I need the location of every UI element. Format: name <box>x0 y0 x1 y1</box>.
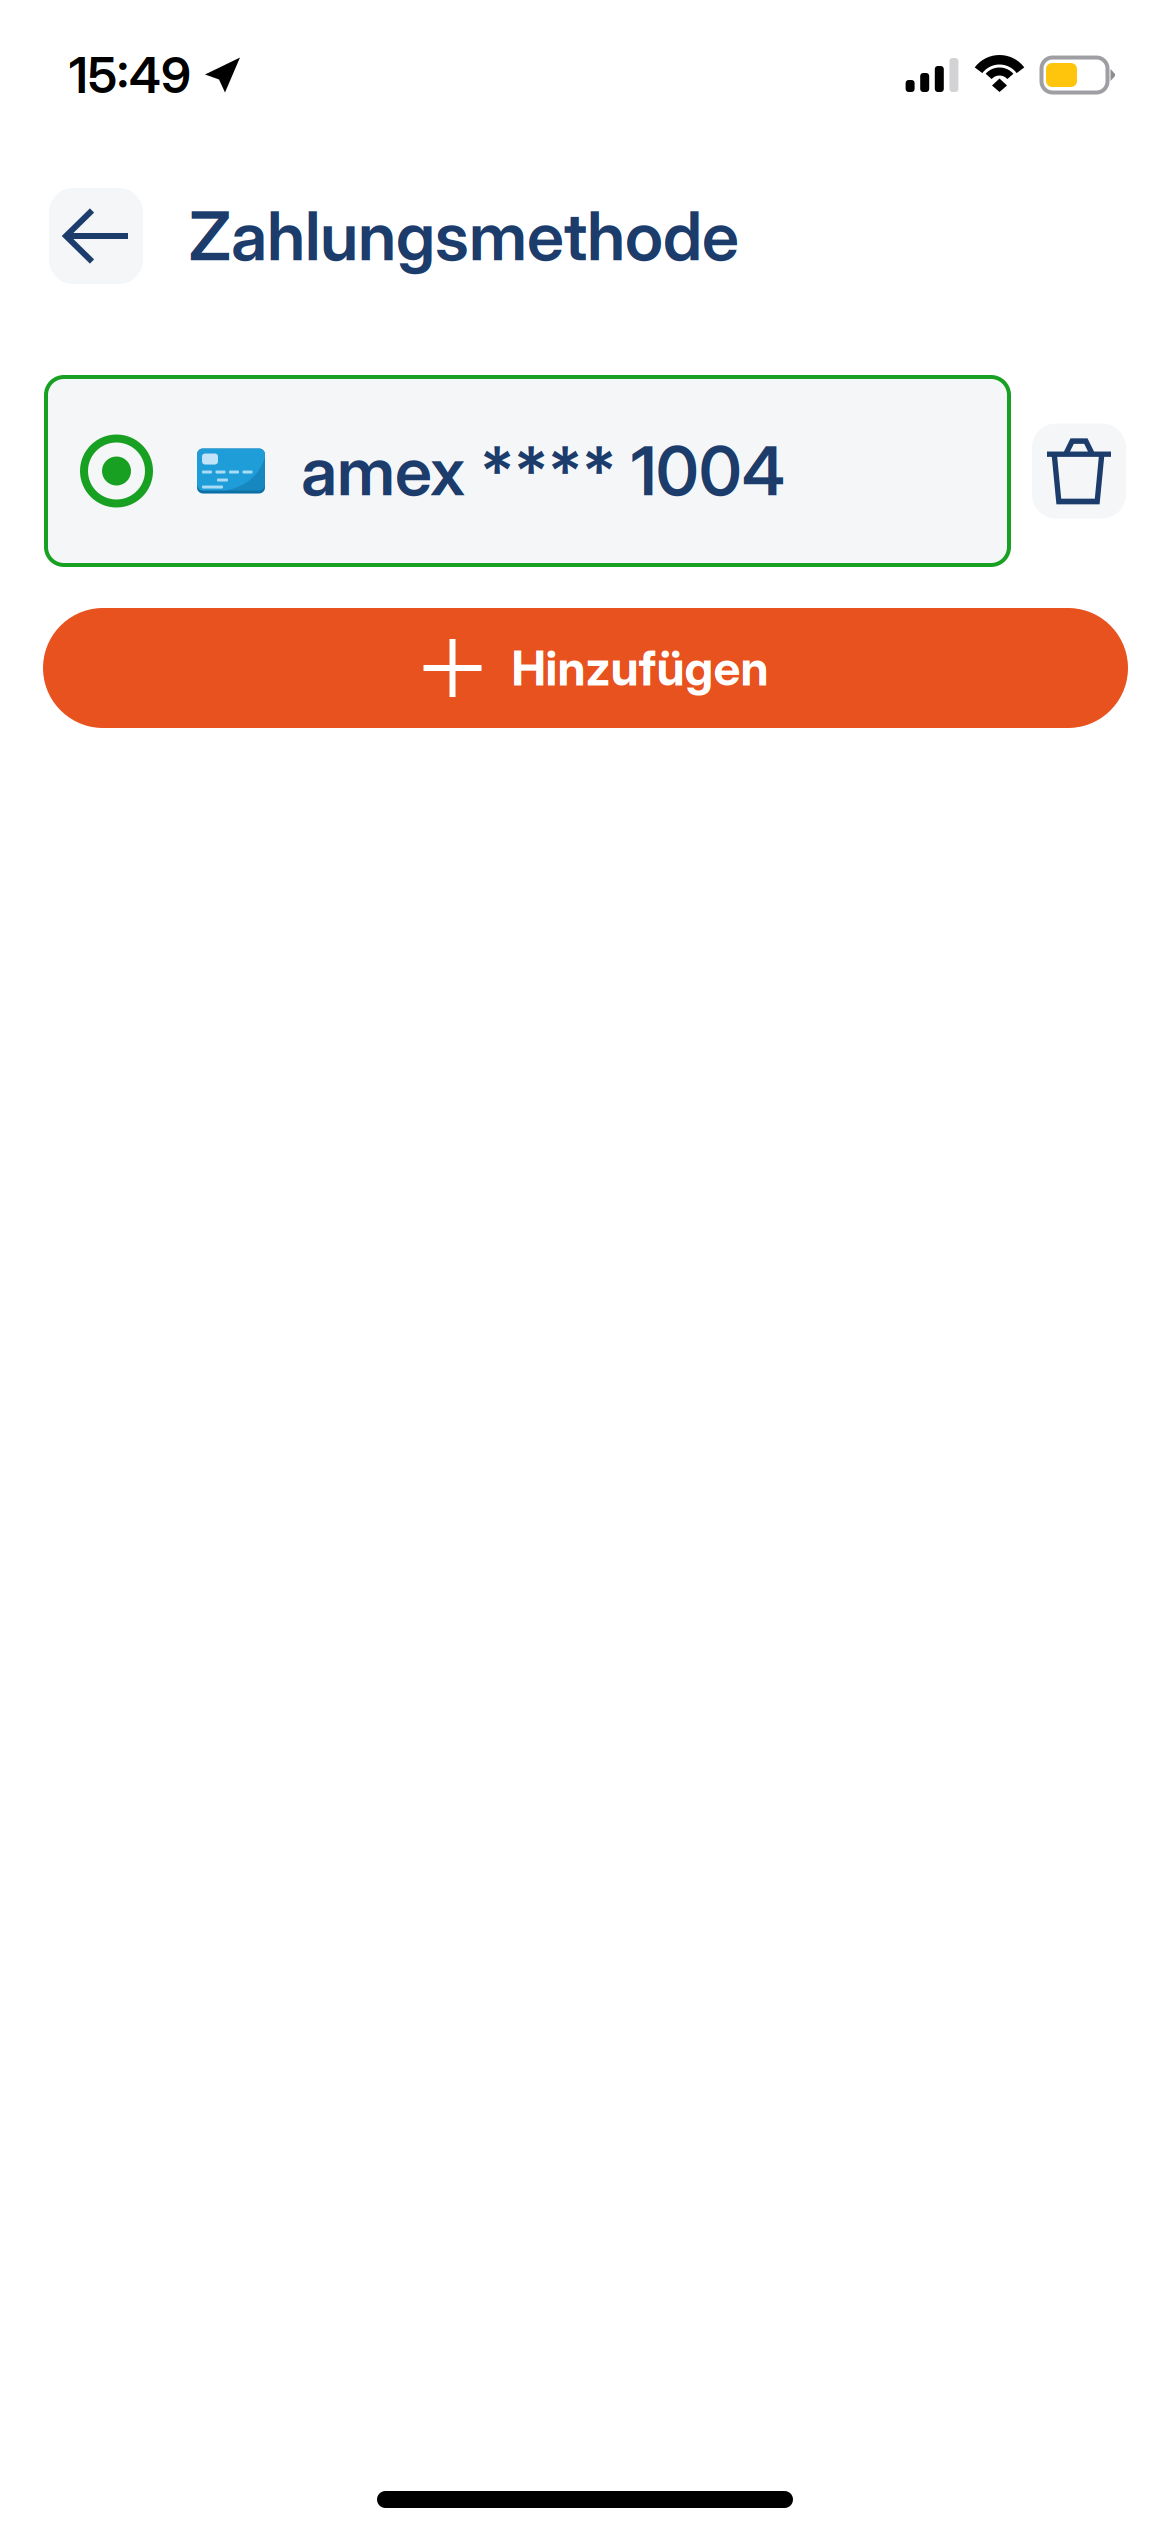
button[interactable]: Zurück <box>49 188 143 284</box>
button[interactable]: Hinzufügen <box>43 608 1128 728</box>
staticText: Hinzufügen <box>511 639 768 697</box>
button[interactable]: amex **** 1004 <box>46 377 1009 565</box>
staticText: 15:49 <box>69 45 191 105</box>
staticText: amex **** 1004 <box>301 431 785 511</box>
button[interactable]: Löschen <box>1032 423 1126 518</box>
staticText: Zahlungsmethode <box>189 196 739 276</box>
